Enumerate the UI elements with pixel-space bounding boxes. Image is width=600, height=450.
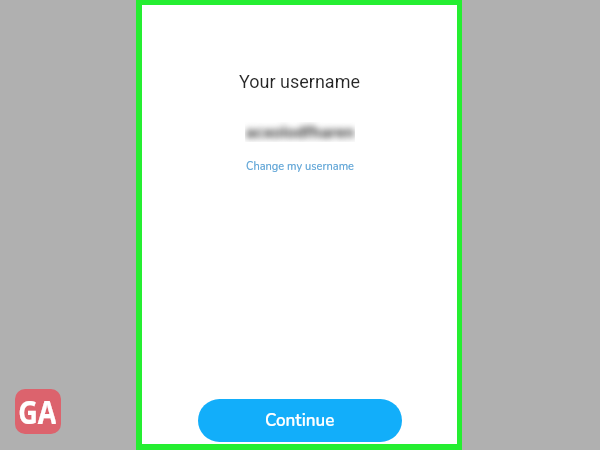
staticText: GA [18,389,56,434]
staticText: Your username [239,71,360,92]
staticText: acxolodfharen [245,122,355,142]
button[interactable]: Change my username [236,153,364,180]
staticText: Continue [265,409,335,432]
button[interactable]: Continue [198,399,402,442]
staticText: Change my username [246,159,354,174]
button[interactable]: GA watermark [15,389,61,434]
